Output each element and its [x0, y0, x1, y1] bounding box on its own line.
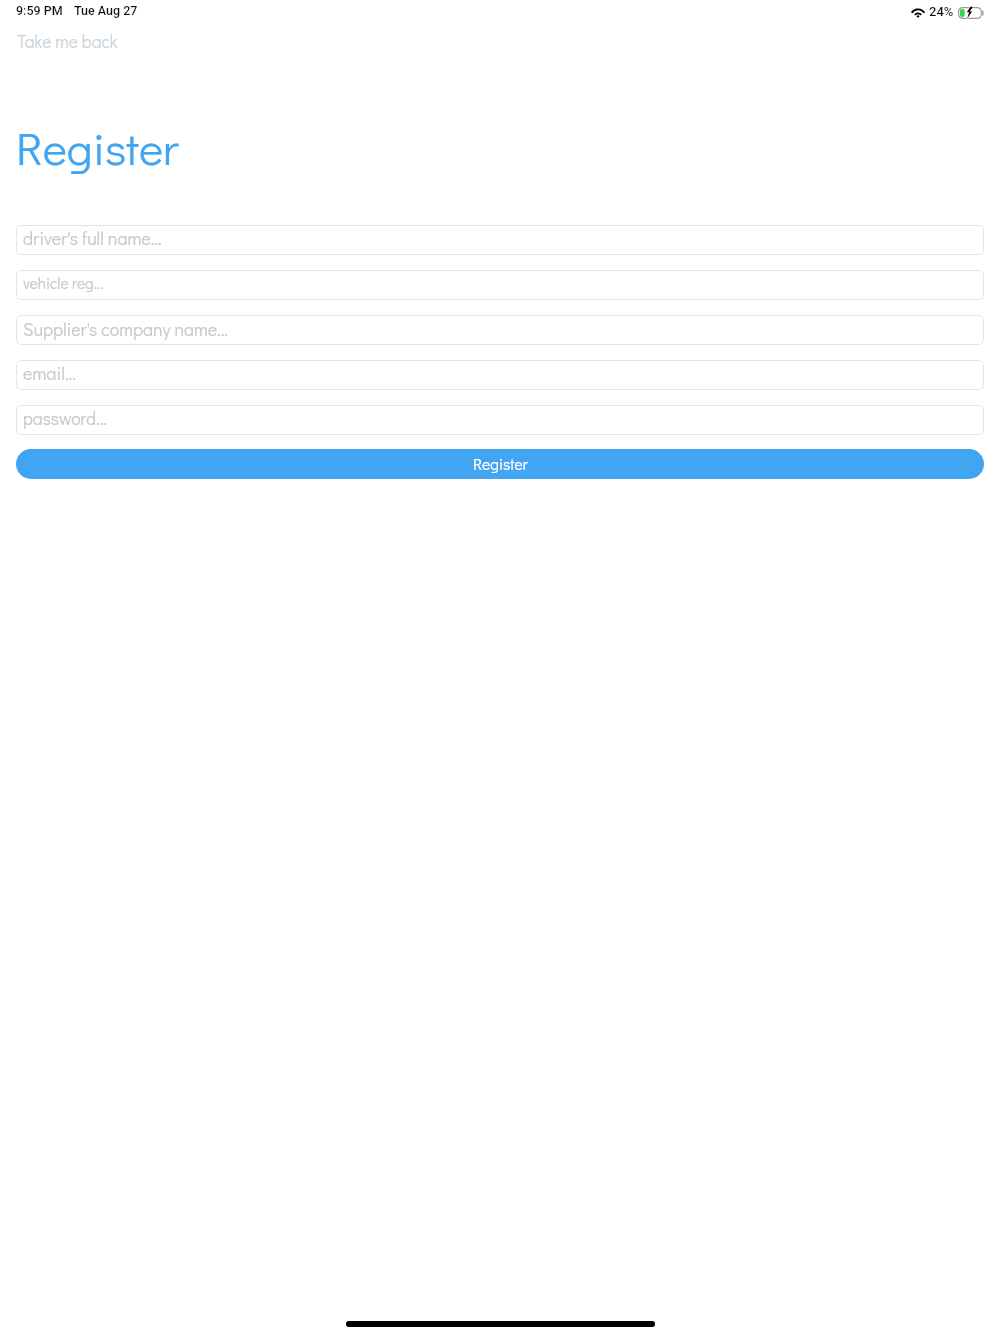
staticText: password...	[23, 407, 107, 430]
staticText: vehicle reg...	[23, 273, 104, 293]
staticText: driver's full name...	[23, 226, 162, 250]
button[interactable]: vehicle reg...	[16, 270, 984, 300]
button[interactable]: Supplier's company name...	[16, 315, 984, 345]
staticText: 9:59 PM	[16, 3, 63, 18]
other: Battery 24 percent, charging	[958, 7, 984, 19]
button[interactable]: Register	[16, 449, 984, 479]
staticText: Register	[473, 454, 528, 474]
other: Wi-Fi	[911, 6, 925, 17]
button[interactable]: Take me back	[17, 30, 118, 53]
staticText: Take me back	[17, 30, 118, 53]
staticText: Supplier's company name...	[23, 317, 228, 340]
staticText: 24%	[929, 4, 954, 19]
staticText: email...	[23, 361, 76, 385]
button[interactable]: email...	[16, 360, 984, 390]
staticText: Tue Aug 27	[74, 3, 138, 18]
staticText: Register	[16, 117, 179, 177]
button[interactable]: password...	[16, 405, 984, 435]
button[interactable]: driver's full name...	[16, 225, 984, 255]
